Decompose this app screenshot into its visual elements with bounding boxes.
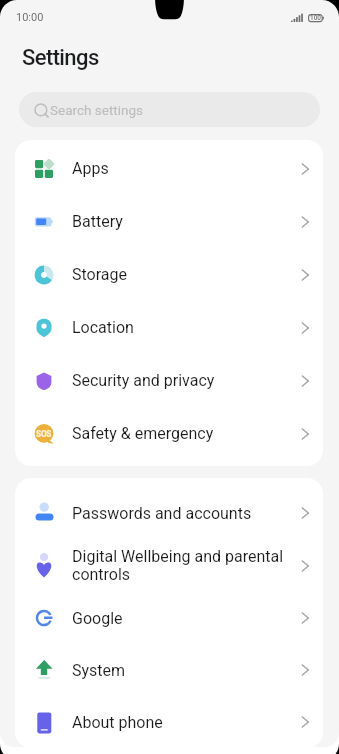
staticText: Storage	[72, 265, 127, 284]
button[interactable]: Passwords and accounts	[15, 487, 323, 539]
staticText: Passwords and accounts	[72, 504, 252, 523]
staticText: Search settings	[50, 102, 144, 118]
staticText: Location	[72, 318, 134, 337]
staticText: Battery	[72, 212, 123, 231]
staticText: Settings	[22, 45, 99, 71]
staticText: 10:00	[16, 11, 44, 24]
staticText: System	[72, 661, 126, 680]
button[interactable]: System	[15, 644, 323, 696]
staticText: SOS	[36, 428, 52, 439]
staticText: Safety & emergency	[72, 424, 214, 443]
button[interactable]: Storage	[15, 248, 323, 301]
button[interactable]: Search settings	[19, 92, 320, 127]
staticText: Apps	[72, 159, 109, 178]
button[interactable]: Battery	[15, 195, 323, 248]
staticText: About phone	[72, 713, 163, 732]
button[interactable]: Location	[15, 301, 323, 354]
staticText: Google	[72, 609, 123, 628]
staticText: 100	[310, 14, 321, 22]
staticText: Digital Wellbeing and parental controls	[72, 547, 288, 584]
button[interactable]: Security and privacy	[15, 354, 323, 407]
button[interactable]: Apps	[15, 142, 323, 195]
button[interactable]: SOS	[15, 407, 323, 460]
staticText: Security and privacy	[72, 371, 215, 390]
button[interactable]: Google	[15, 592, 323, 644]
button[interactable]: About phone	[15, 696, 323, 748]
button[interactable]: Digital Wellbeing and parental controls	[15, 539, 323, 592]
